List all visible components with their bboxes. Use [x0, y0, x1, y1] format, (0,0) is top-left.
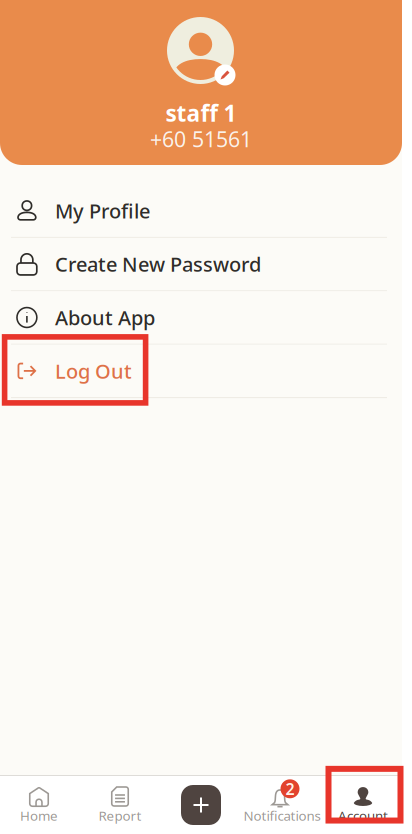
staticText: Create New Password [55, 251, 261, 277]
staticText: staff 1 [165, 98, 236, 128]
staticText: +60 51561 [150, 125, 252, 153]
staticText: Notifications [243, 807, 320, 824]
staticText: Report [98, 807, 141, 824]
button[interactable]: Report [79, 776, 160, 834]
staticText: About App [55, 304, 155, 331]
staticText: Log Out [55, 358, 132, 384]
button[interactable]: Notifications [241, 776, 322, 834]
staticText: 2 [285, 778, 294, 799]
staticText: My Profile [55, 197, 150, 224]
button[interactable]: About App [0, 291, 402, 344]
button[interactable]: Log Out [0, 345, 402, 397]
staticText: Account [338, 807, 388, 824]
staticText: Home [20, 807, 58, 824]
button[interactable]: My Profile [0, 184, 402, 237]
button[interactable]: Add [160, 776, 241, 834]
button[interactable]: Home [0, 776, 79, 834]
button[interactable]: Account [322, 776, 403, 834]
button[interactable]: Create New Password [0, 238, 402, 290]
